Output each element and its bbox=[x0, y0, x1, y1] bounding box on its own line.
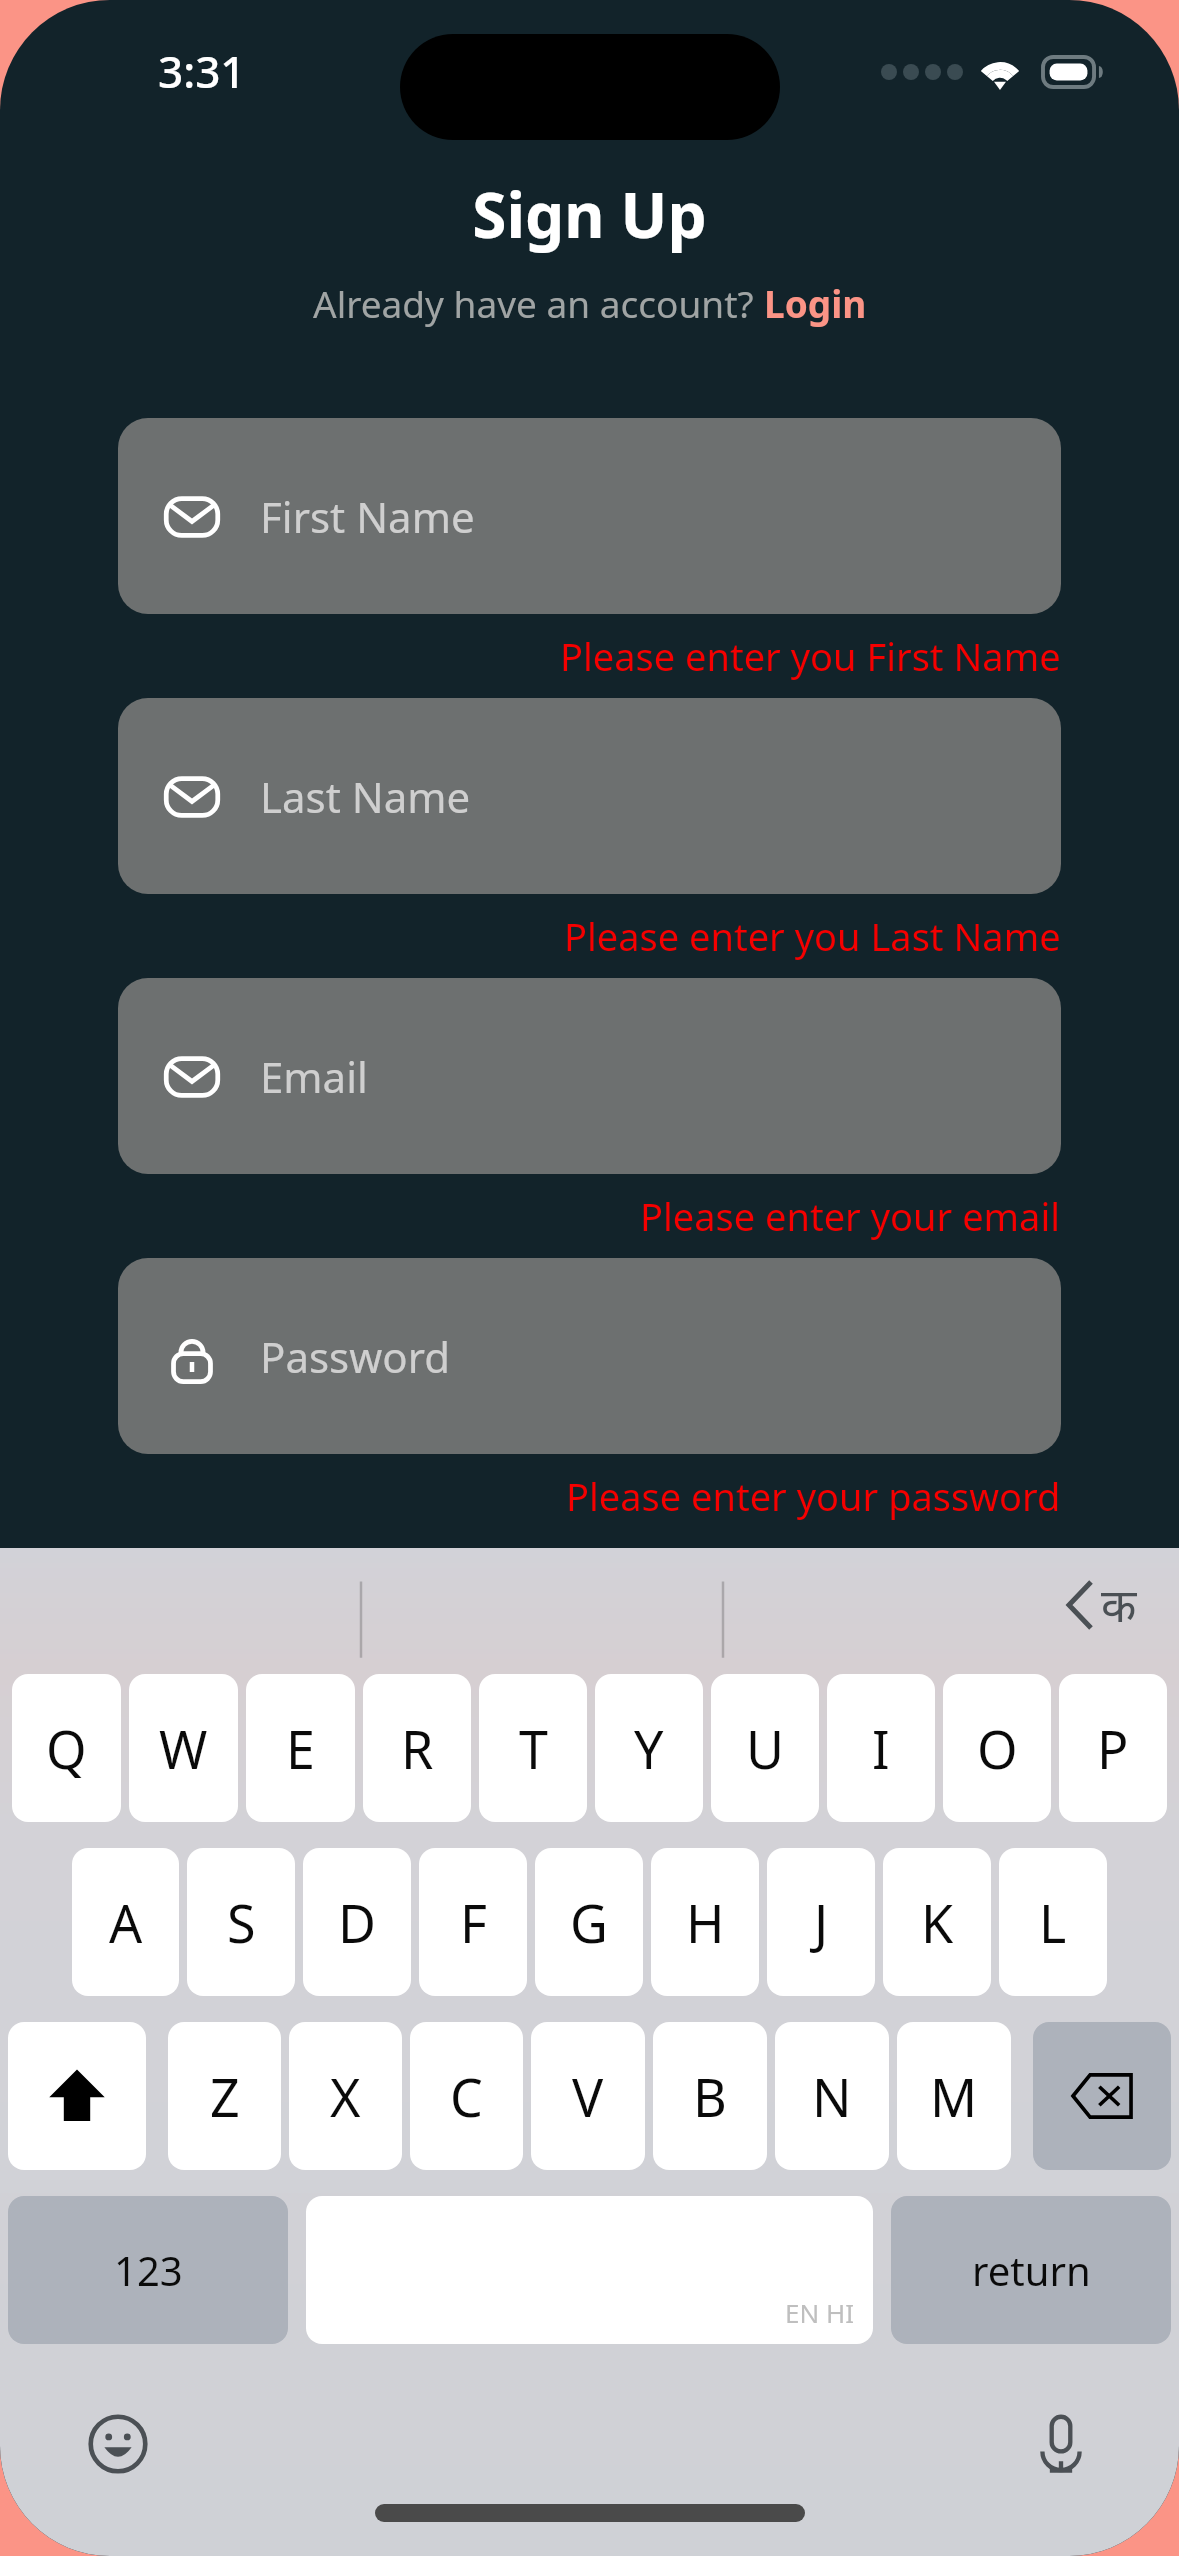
staticText: Already have an account? bbox=[313, 278, 764, 328]
button[interactable]: Y bbox=[595, 1674, 703, 1822]
staticText: C bbox=[450, 2061, 483, 2132]
button[interactable]: E bbox=[246, 1674, 355, 1822]
staticText: Please enter your email bbox=[640, 1190, 1061, 1242]
staticText: D bbox=[338, 1887, 376, 1958]
button[interactable]: M bbox=[897, 2022, 1011, 2170]
staticText: Please enter you Last Name bbox=[564, 910, 1061, 962]
staticText: M bbox=[930, 2061, 978, 2132]
staticText: क bbox=[1101, 1573, 1137, 1636]
button[interactable]: I bbox=[827, 1674, 935, 1822]
button[interactable]: T bbox=[479, 1674, 587, 1822]
staticText: J bbox=[814, 1887, 829, 1958]
staticText: S bbox=[227, 1887, 256, 1958]
button[interactable]: Q bbox=[12, 1674, 121, 1822]
staticText: Z bbox=[210, 2061, 240, 2132]
staticText: Please enter your password bbox=[566, 1470, 1061, 1522]
button[interactable]: Email bbox=[118, 978, 1061, 1174]
staticText: T bbox=[519, 1713, 548, 1784]
button[interactable]: D bbox=[303, 1848, 411, 1996]
staticText: Q bbox=[46, 1713, 87, 1784]
button[interactable]: K bbox=[883, 1848, 991, 1996]
staticText: R bbox=[401, 1713, 434, 1784]
staticText: Last Name bbox=[260, 768, 471, 825]
staticText: X bbox=[330, 2061, 361, 2132]
button[interactable]: S bbox=[187, 1848, 295, 1996]
staticText: Y bbox=[634, 1713, 664, 1784]
staticText: return bbox=[972, 2243, 1091, 2297]
button[interactable]: U bbox=[711, 1674, 819, 1822]
staticText: O bbox=[977, 1713, 1018, 1784]
staticText: EN HI bbox=[785, 2295, 855, 2330]
button[interactable]: O bbox=[943, 1674, 1051, 1822]
staticText: Please enter you First Name bbox=[560, 630, 1061, 682]
button[interactable]: First Name bbox=[118, 418, 1061, 614]
button[interactable]: A bbox=[72, 1848, 179, 1996]
staticText: U bbox=[746, 1713, 785, 1784]
button[interactable]: Z bbox=[168, 2022, 281, 2170]
button[interactable]: H bbox=[651, 1848, 759, 1996]
button[interactable]: Space bbox=[306, 2196, 873, 2344]
button[interactable]: return bbox=[891, 2196, 1171, 2344]
button[interactable]: B bbox=[653, 2022, 767, 2170]
staticText: F bbox=[460, 1887, 487, 1958]
staticText: I bbox=[872, 1713, 890, 1784]
button[interactable]: Password bbox=[118, 1258, 1061, 1454]
button[interactable]: C bbox=[410, 2022, 523, 2170]
button[interactable]: G bbox=[535, 1848, 643, 1996]
button[interactable]: L bbox=[999, 1848, 1107, 1996]
button[interactable]: V bbox=[531, 2022, 645, 2170]
staticText: L bbox=[1039, 1887, 1067, 1958]
button[interactable]: Emoji bbox=[78, 2404, 158, 2484]
button[interactable]: J bbox=[767, 1848, 875, 1996]
staticText: 123 bbox=[114, 2243, 183, 2297]
button[interactable]: Shift bbox=[8, 2022, 146, 2170]
staticText: P bbox=[1097, 1713, 1129, 1784]
button[interactable]: W bbox=[129, 1674, 238, 1822]
staticText: G bbox=[570, 1887, 608, 1958]
staticText: W bbox=[159, 1713, 208, 1784]
button[interactable]: Voice input bbox=[1021, 2404, 1101, 2484]
staticText: K bbox=[921, 1887, 954, 1958]
button[interactable]: Backspace bbox=[1033, 2022, 1171, 2170]
staticText: H bbox=[686, 1887, 725, 1958]
staticText: Login bbox=[764, 278, 867, 328]
staticText: Password bbox=[260, 1328, 450, 1385]
button[interactable]: Switch language bbox=[1069, 1573, 1137, 1636]
button[interactable]: 123 bbox=[8, 2196, 288, 2344]
button[interactable]: Login bbox=[764, 278, 867, 328]
button[interactable]: N bbox=[775, 2022, 889, 2170]
staticText: N bbox=[812, 2061, 852, 2132]
button[interactable]: F bbox=[419, 1848, 527, 1996]
button[interactable]: P bbox=[1059, 1674, 1167, 1822]
staticText: 3:31 bbox=[158, 41, 246, 101]
button[interactable]: X bbox=[289, 2022, 402, 2170]
staticText: B bbox=[693, 2061, 727, 2132]
staticText: Sign Up bbox=[0, 172, 1179, 256]
staticText: Email bbox=[260, 1048, 368, 1105]
button[interactable]: Last Name bbox=[118, 698, 1061, 894]
staticText: First Name bbox=[260, 488, 475, 545]
staticText: A bbox=[109, 1887, 143, 1958]
button[interactable]: R bbox=[363, 1674, 471, 1822]
staticText: E bbox=[286, 1713, 315, 1784]
staticText: V bbox=[572, 2061, 604, 2132]
